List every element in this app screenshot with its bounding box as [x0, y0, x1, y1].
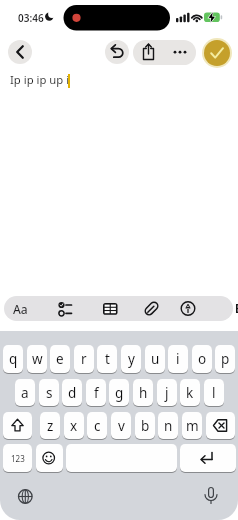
button[interactable]: x	[64, 412, 84, 439]
staticText: e	[56, 350, 64, 368]
button[interactable]: a	[15, 379, 35, 406]
button[interactable]	[206, 412, 235, 439]
staticText: B	[235, 301, 238, 317]
staticText: b	[141, 417, 150, 435]
button[interactable]	[36, 444, 63, 472]
button[interactable]: l	[204, 379, 224, 406]
staticText: d	[68, 384, 77, 402]
staticText: p	[221, 350, 230, 368]
button[interactable]: v	[111, 412, 131, 439]
button[interactable]	[52, 296, 78, 321]
button[interactable]	[3, 412, 32, 439]
button[interactable]: g	[109, 379, 129, 406]
button[interactable]	[164, 40, 196, 65]
button[interactable]: h	[133, 379, 153, 406]
button[interactable]: o	[192, 345, 212, 373]
staticText: y	[128, 350, 135, 368]
button[interactable]: m	[182, 412, 202, 439]
button[interactable]: s	[39, 379, 59, 406]
button[interactable]: q	[3, 345, 23, 373]
staticText: k	[186, 384, 194, 402]
staticText: j	[165, 384, 169, 402]
staticText: f	[94, 384, 99, 402]
button[interactable]: Aa	[6, 296, 34, 321]
staticText: 03:46	[18, 11, 44, 25]
button[interactable]: i	[168, 345, 188, 373]
button[interactable]	[139, 296, 163, 321]
staticText: l	[212, 384, 216, 402]
button[interactable]	[105, 40, 129, 64]
button[interactable]: u	[145, 345, 165, 373]
staticText: Ip ip ip up i	[10, 72, 70, 87]
staticText: i	[176, 350, 180, 368]
staticText: r	[81, 350, 87, 368]
staticText: o	[198, 350, 207, 368]
staticText: c	[94, 417, 101, 435]
button[interactable]	[3, 444, 32, 472]
button[interactable]: z	[40, 412, 60, 439]
staticText: n	[164, 417, 173, 435]
button[interactable]	[133, 40, 164, 65]
staticText: t	[105, 350, 110, 368]
staticText: g	[115, 384, 124, 402]
button[interactable]	[198, 483, 225, 510]
button[interactable]	[202, 38, 232, 68]
staticText: w	[32, 350, 43, 368]
staticText: x	[70, 417, 78, 435]
button[interactable]	[12, 483, 39, 510]
staticText: a	[21, 384, 29, 402]
button[interactable]: d	[62, 379, 82, 406]
button[interactable]	[176, 296, 200, 321]
button[interactable]: n	[158, 412, 178, 439]
button[interactable]: c	[87, 412, 107, 439]
staticText: q	[9, 350, 18, 368]
button[interactable]	[8, 40, 32, 64]
button[interactable]: r	[74, 345, 94, 373]
button[interactable]	[66, 444, 177, 472]
staticText: u	[151, 350, 160, 368]
button[interactable]: f	[86, 379, 106, 406]
staticText: v	[118, 417, 125, 435]
button[interactable]: b	[135, 412, 155, 439]
button[interactable]	[180, 444, 236, 472]
staticText: 123	[11, 453, 25, 464]
staticText: h	[139, 384, 148, 402]
staticText: m	[186, 417, 199, 435]
button[interactable]: p	[215, 345, 235, 373]
button[interactable]: e	[50, 345, 70, 373]
button[interactable]: k	[180, 379, 200, 406]
staticText: Aa	[13, 301, 28, 317]
button[interactable]	[98, 296, 122, 321]
button[interactable]: y	[121, 345, 141, 373]
button[interactable]: w	[27, 345, 47, 373]
button[interactable]: t	[97, 345, 117, 373]
staticText: z	[47, 417, 54, 435]
button[interactable]: j	[157, 379, 177, 406]
staticText: s	[46, 384, 53, 402]
